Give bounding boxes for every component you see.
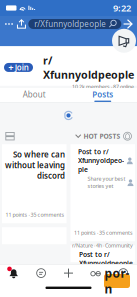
staticText: r/Xfunnyoldpeople <box>34 19 106 29</box>
staticText: HOT POSTS <box>83 132 120 141</box>
button[interactable]: Post to r/Xfunnyoldpeople <box>70 144 135 241</box>
button[interactable]: Home <box>110 265 137 283</box>
staticText: Posts <box>92 89 113 100</box>
button[interactable]: So where can without leaving discord <box>2 144 66 223</box>
staticText: r/Xfunnyoldpeople <box>43 53 134 82</box>
button[interactable]: + <box>4 63 33 72</box>
staticText: So where can without leaving discord <box>4 149 64 181</box>
button[interactable]: Notifications <box>0 265 27 283</box>
staticText: Post to r/Xfunnyoldpeople <box>79 250 133 268</box>
button[interactable]: About <box>0 88 68 102</box>
button[interactable]: Create post <box>55 265 82 283</box>
button[interactable]: Posts <box>68 88 137 102</box>
staticText: porn <box>104 265 129 297</box>
button[interactable]: HOT POSTS <box>76 132 132 141</box>
button[interactable]: Back <box>122 16 134 32</box>
staticText: r/Nature · 4h · Community <box>72 242 133 249</box>
button[interactable]: Share <box>16 16 28 32</box>
button[interactable]: Chat <box>27 265 55 283</box>
staticText: Share your best stories yet <box>87 175 125 189</box>
staticText: + <box>8 61 13 74</box>
staticText: Join <box>15 62 29 73</box>
button[interactable]: Change layout <box>4 129 16 143</box>
staticText: Post to r/Xfunnyoldpeople <box>78 147 124 174</box>
staticText: About <box>23 89 46 100</box>
button[interactable]: r/Xfunnyoldpeople <box>28 19 121 29</box>
staticText: 9:22 <box>113 2 131 14</box>
button[interactable]: Discover <box>82 265 110 283</box>
staticText: 11 points · 35 comments <box>74 229 133 236</box>
staticText: 11 points · 35 comments <box>5 211 64 218</box>
staticText: 10.2k members · 87 online <box>72 83 134 90</box>
button[interactable]: More options <box>3 16 15 32</box>
